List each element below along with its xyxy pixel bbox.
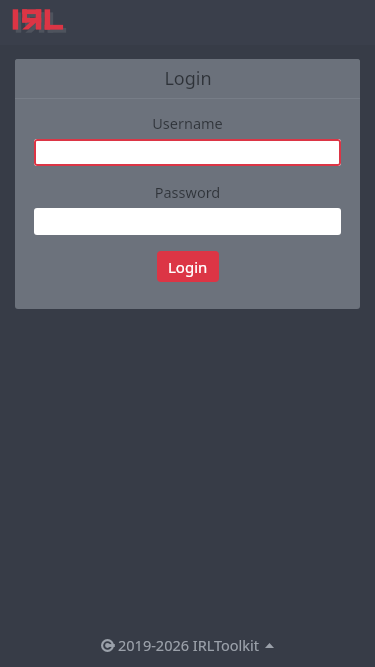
other: Expand [265, 642, 274, 649]
staticText: 2019-2026 IRLToolkit [118, 635, 260, 655]
staticText: Username [34, 113, 341, 133]
staticText: Login [168, 257, 208, 277]
staticText: Password [34, 182, 341, 202]
button[interactable]: Password field [34, 208, 341, 235]
staticText: Login [164, 66, 212, 91]
button[interactable]: 2019-2026 IRLToolkit [0, 623, 375, 667]
button[interactable]: Username field [34, 139, 341, 166]
button[interactable]: Login [157, 251, 219, 282]
button[interactable]: IRLToolkit home [11, 7, 67, 36]
